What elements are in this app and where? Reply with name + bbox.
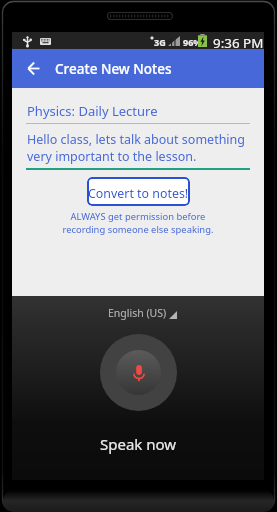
button[interactable]: Back (12, 49, 55, 88)
staticText: Speak now (100, 434, 177, 454)
staticText: ALWAYS get permission before recording s… (12, 210, 264, 236)
staticText: 96% (183, 36, 202, 48)
staticText: Physics: Daily Lecture (27, 102, 158, 120)
button[interactable]: Start voice input (100, 334, 177, 411)
staticText: 9:36 PM (213, 34, 264, 51)
staticText: Hello class, lets talk about something v… (27, 131, 246, 165)
staticText: Create New Notes (55, 60, 172, 78)
button[interactable]: Convert to notes! (87, 177, 190, 206)
staticText: Convert to notes! (88, 185, 189, 202)
button[interactable]: English (US) (106, 304, 179, 322)
staticText: 3G (154, 36, 166, 48)
staticText: English (US) (108, 306, 167, 320)
